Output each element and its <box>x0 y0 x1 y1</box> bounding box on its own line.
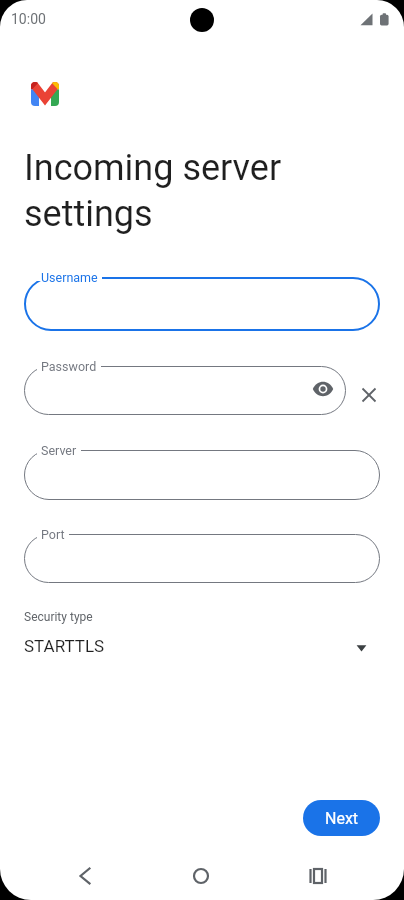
button[interactable] <box>24 265 380 343</box>
button[interactable]: Recents <box>294 852 342 900</box>
button[interactable]: Clear <box>357 383 381 407</box>
button[interactable]: Back <box>61 852 109 900</box>
button[interactable] <box>24 522 380 595</box>
staticText: Incoming server settings <box>24 147 334 234</box>
staticText: Security type <box>24 610 93 624</box>
button[interactable]: Security type <box>0 605 404 660</box>
staticText: 10:00 <box>11 11 46 27</box>
button[interactable]: Home <box>177 852 225 900</box>
button[interactable] <box>24 354 346 427</box>
button[interactable] <box>24 438 380 512</box>
staticText: Next <box>325 809 359 828</box>
button[interactable]: Show password <box>311 377 335 401</box>
staticText: STARTTLS <box>24 636 105 656</box>
button[interactable]: Next <box>303 800 380 836</box>
